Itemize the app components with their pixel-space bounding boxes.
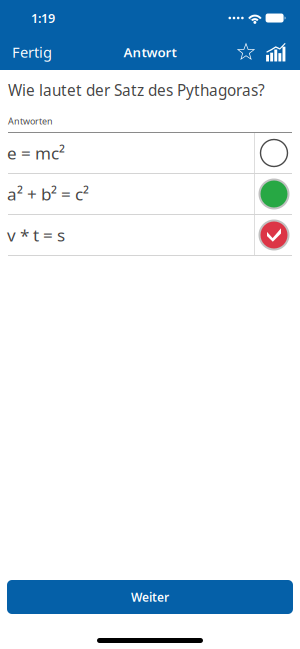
button[interactable]: e = mc² [0,133,300,174]
button[interactable]: Favorit [231,35,261,69]
button[interactable]: v * t = s [0,215,300,256]
staticText: Antwort [123,43,176,61]
button[interactable]: Weiter [7,580,293,614]
button[interactable]: Statistik [261,35,291,69]
staticText: e = mc² [7,141,65,165]
button[interactable]: Fertig [0,35,62,69]
button[interactable]: a² + b² = c² [0,174,300,215]
staticText: 1:19 [31,9,55,27]
staticText: v * t = s [7,223,65,247]
staticText: Weiter [131,589,169,605]
staticText: Wie lautet der Satz des Pythagoras? [8,80,265,100]
staticText: a² + b² = c² [7,182,89,206]
staticText: Antworten [8,115,53,127]
staticText: Fertig [12,42,52,62]
